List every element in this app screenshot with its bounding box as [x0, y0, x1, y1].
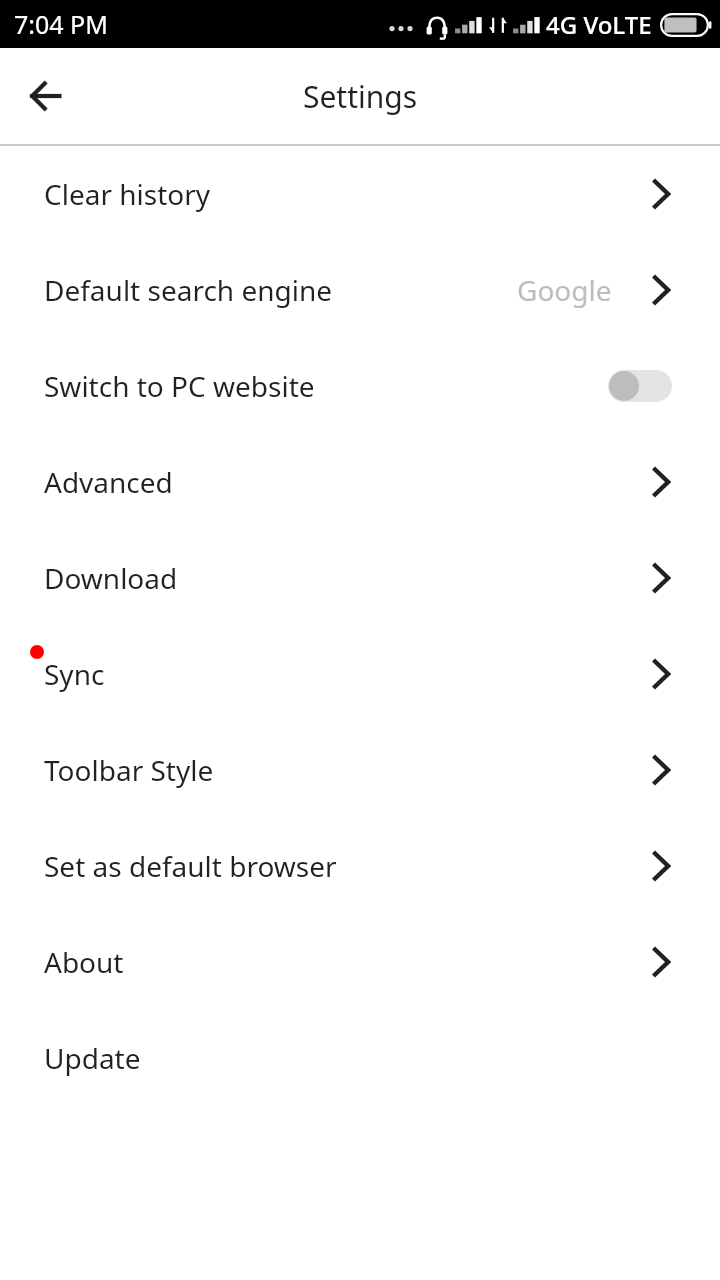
button[interactable]: Toolbar Style — [0, 722, 720, 818]
button[interactable]: Download — [0, 530, 720, 626]
button[interactable]: Default search engine — [0, 242, 720, 338]
staticText: Switch to PC website — [44, 367, 315, 405]
staticText: About — [44, 943, 124, 981]
staticText: Advanced — [44, 463, 173, 501]
staticText: 7:04 PM — [14, 7, 108, 41]
button[interactable]: Switch to PC website — [0, 338, 720, 434]
button[interactable]: Update — [0, 1010, 720, 1106]
button[interactable]: Sync — [0, 626, 720, 722]
staticText: Google — [517, 271, 612, 309]
staticText: Update — [44, 1039, 141, 1077]
staticText: Clear history — [44, 175, 211, 213]
staticText: Settings — [0, 76, 720, 117]
button[interactable]: Clear history — [0, 146, 720, 242]
staticText: 4G VoLTE — [546, 8, 652, 41]
button[interactable]: About — [0, 914, 720, 1010]
button[interactable]: Advanced — [0, 434, 720, 530]
staticText: Default search engine — [44, 271, 333, 309]
staticText: Set as default browser — [44, 847, 337, 885]
staticText: Download — [44, 559, 178, 597]
staticText: Sync — [44, 655, 105, 693]
button[interactable]: Back — [11, 62, 79, 130]
button[interactable]: Switch to PC website toggle — [608, 370, 672, 402]
button[interactable]: Set as default browser — [0, 818, 720, 914]
staticText: Toolbar Style — [44, 751, 214, 789]
